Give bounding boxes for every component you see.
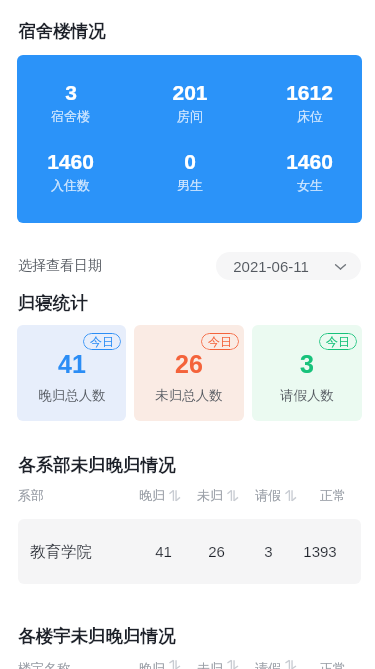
- staticText: 1460: [47, 150, 94, 173]
- button[interactable]: 请假: [246, 487, 304, 503]
- staticText: 请假人数: [280, 387, 334, 404]
- button[interactable]: 今日: [134, 325, 244, 421]
- button[interactable]: 今日: [17, 325, 126, 421]
- staticText: 床位: [297, 108, 323, 124]
- staticText: 2021-06-11: [233, 258, 309, 275]
- staticText: 男生: [177, 177, 203, 193]
- staticText: 201: [172, 81, 208, 104]
- staticText: 晚归: [139, 660, 165, 669]
- staticText: 1460: [286, 150, 333, 173]
- staticText: 26: [175, 350, 203, 378]
- staticText: 今日: [208, 334, 232, 349]
- staticText: 3: [300, 350, 314, 378]
- other: Select date: [334, 260, 347, 273]
- staticText: 1612: [286, 81, 333, 104]
- staticText: 未归: [197, 487, 223, 503]
- staticText: 入住数: [51, 177, 90, 193]
- staticText: 41: [155, 543, 172, 560]
- staticText: 正常: [320, 660, 346, 669]
- button[interactable]: 请假: [246, 660, 304, 669]
- staticText: 请假: [255, 487, 281, 503]
- button[interactable]: 未归: [188, 660, 246, 669]
- staticText: 请假: [255, 660, 281, 669]
- staticText: 0: [184, 150, 196, 173]
- staticText: 楼宇名称: [18, 660, 70, 669]
- staticText: 晚归总人数: [38, 387, 106, 404]
- staticText: 未归总人数: [155, 387, 223, 404]
- staticText: 未归: [197, 660, 223, 669]
- staticText: 各楼宇未归晚归情况: [18, 625, 176, 647]
- staticText: 归寝统计: [18, 292, 88, 314]
- staticText: 房间: [177, 108, 203, 124]
- staticText: 系部: [18, 487, 44, 503]
- staticText: 教育学院: [30, 542, 92, 562]
- staticText: 各系部未归晚归情况: [18, 454, 176, 476]
- staticText: 41: [58, 350, 86, 378]
- staticText: 女生: [297, 177, 323, 193]
- button[interactable]: 晚归: [131, 487, 188, 503]
- staticText: 宿舍楼: [51, 108, 90, 124]
- button[interactable]: 教育学院: [18, 519, 361, 584]
- staticText: 1393: [303, 543, 337, 560]
- staticText: 3: [264, 543, 273, 560]
- staticText: 选择查看日期: [18, 257, 102, 275]
- button[interactable]: 今日: [252, 325, 362, 421]
- button[interactable]: 2021-06-11: [216, 252, 361, 280]
- staticText: 3: [65, 81, 77, 104]
- staticText: 26: [208, 543, 225, 560]
- button[interactable]: 晚归: [131, 660, 188, 669]
- staticText: 今日: [326, 334, 350, 349]
- staticText: 正常: [320, 487, 346, 503]
- staticText: 宿舍楼情况: [18, 20, 106, 42]
- staticText: 晚归: [139, 487, 165, 503]
- button[interactable]: 未归: [188, 487, 246, 503]
- staticText: 今日: [90, 334, 114, 349]
